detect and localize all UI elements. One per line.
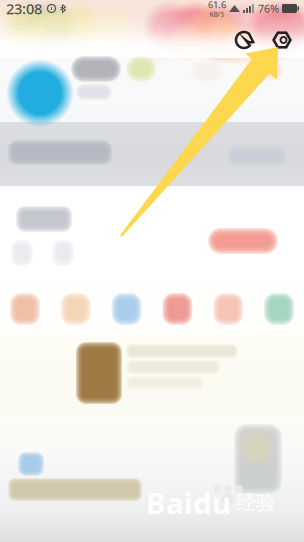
staticText: 经验 — [236, 490, 276, 515]
button[interactable]: Night mode — [0, 0, 304, 542]
button[interactable]: Menu item — [264, 293, 294, 325]
button[interactable]: Menu item — [61, 293, 91, 325]
staticText: 61.6 — [208, 0, 226, 11]
button[interactable]: Settings — [0, 0, 304, 542]
staticText: KB/S — [209, 10, 224, 19]
button[interactable]: Menu item — [112, 293, 142, 325]
button[interactable] — [0, 0, 304, 542]
button[interactable]: Primary action — [0, 0, 304, 542]
staticText: 76% — [258, 1, 279, 16]
button[interactable]: Menu item — [10, 293, 40, 325]
button[interactable]: Menu item — [213, 293, 243, 325]
button[interactable]: Menu item — [162, 293, 192, 325]
staticText: 23:08 — [6, 0, 42, 18]
button[interactable] — [0, 0, 304, 542]
staticText: Baidu — [146, 483, 231, 522]
